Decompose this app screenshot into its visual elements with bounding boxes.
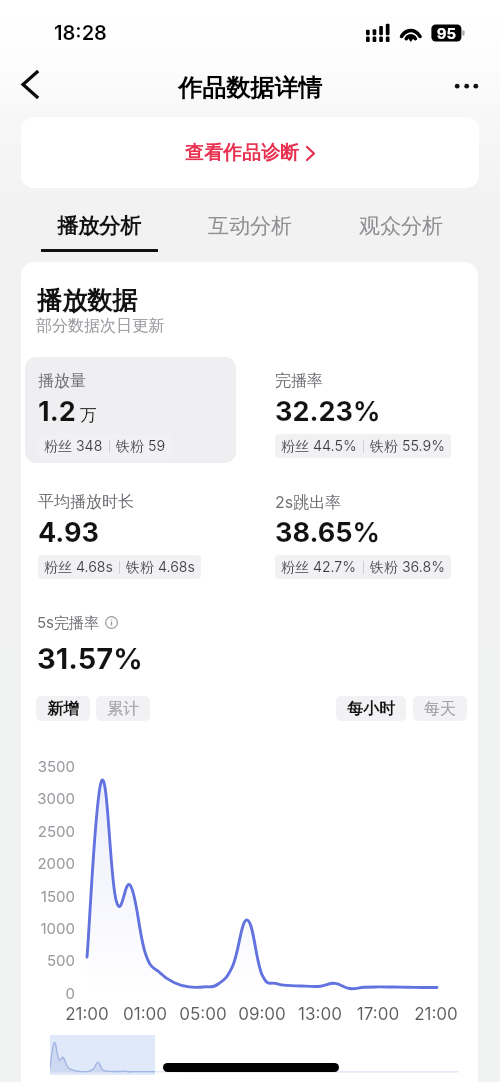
staticText: 21:00 xyxy=(47,1004,127,1025)
button[interactable]: Back xyxy=(6,60,54,108)
staticText: 1500 xyxy=(21,887,75,905)
staticText: 2500 xyxy=(21,822,75,840)
button[interactable]: 完播率 xyxy=(262,357,473,463)
staticText: 38.65% xyxy=(275,516,380,549)
staticText: 4.93 xyxy=(38,516,99,549)
staticText: 21:00 xyxy=(396,1004,476,1025)
staticText: 0 xyxy=(21,984,75,1002)
staticText: 95 xyxy=(436,24,457,42)
staticText: 1.2 xyxy=(38,395,76,428)
staticText: 累计 xyxy=(107,699,139,719)
staticText: 17:00 xyxy=(338,1004,418,1025)
staticText: 铁粉 59 xyxy=(116,437,166,455)
button[interactable]: 新增 xyxy=(36,696,90,721)
button[interactable]: More options xyxy=(445,68,488,106)
staticText: 查看作品诊断 xyxy=(185,141,299,165)
staticText: 18:28 xyxy=(54,21,107,45)
button[interactable]: 累计 xyxy=(96,696,150,721)
button[interactable]: 播放分析 xyxy=(24,196,174,258)
staticText: 播放数据 xyxy=(37,285,137,316)
button[interactable]: 查看作品诊断 xyxy=(21,117,479,188)
button[interactable]: 2s跳出率 xyxy=(262,478,473,584)
staticText: 铁粉 36.8% xyxy=(370,558,445,576)
staticText: 铁粉 4.68s xyxy=(126,558,195,576)
staticText: 完播率 xyxy=(275,371,323,391)
staticText: 观众分析 xyxy=(359,213,443,239)
staticText: 3000 xyxy=(21,789,75,807)
staticText: 播放量 xyxy=(38,371,86,391)
staticText: 1000 xyxy=(21,919,75,937)
staticText: 每小时 xyxy=(347,699,395,719)
staticText: 2000 xyxy=(21,854,75,872)
button[interactable]: 每天 xyxy=(413,696,467,721)
staticText: 作品数据详情 xyxy=(178,73,322,103)
staticText: 500 xyxy=(21,951,75,969)
button[interactable]: 平均播放时长 xyxy=(25,478,236,584)
staticText: 5s完播率 xyxy=(37,613,100,632)
staticText: 万 xyxy=(80,405,97,426)
staticText: 每天 xyxy=(424,699,456,719)
staticText: 粉丝 44.5% xyxy=(281,437,357,455)
button[interactable]: 互动分析 xyxy=(174,196,325,258)
staticText: 互动分析 xyxy=(208,213,292,239)
staticText: 粉丝 42.7% xyxy=(281,558,357,576)
staticText: 09:00 xyxy=(222,1004,302,1025)
staticText: 粉丝 348 xyxy=(44,437,103,455)
button[interactable]: 观众分析 xyxy=(325,196,476,258)
staticText: 3500 xyxy=(21,757,75,775)
staticText: 播放分析 xyxy=(57,213,141,239)
staticText: 01:00 xyxy=(105,1004,185,1025)
staticText: 平均播放时长 xyxy=(38,492,134,512)
button[interactable]: 每小时 xyxy=(336,696,406,721)
staticText: 05:00 xyxy=(163,1004,243,1025)
staticText: 13:00 xyxy=(280,1004,360,1025)
staticText: 31.57% xyxy=(37,641,143,676)
button[interactable]: Time range selector xyxy=(50,1035,155,1075)
staticText: 粉丝 4.68s xyxy=(44,558,113,576)
staticText: 2s跳出率 xyxy=(275,492,342,512)
staticText: 铁粉 55.9% xyxy=(370,437,445,455)
staticText: 32.23% xyxy=(275,395,381,428)
staticText: 新增 xyxy=(47,699,79,719)
button[interactable]: 播放量 xyxy=(25,357,236,463)
staticText: 部分数据次日更新 xyxy=(36,316,164,336)
